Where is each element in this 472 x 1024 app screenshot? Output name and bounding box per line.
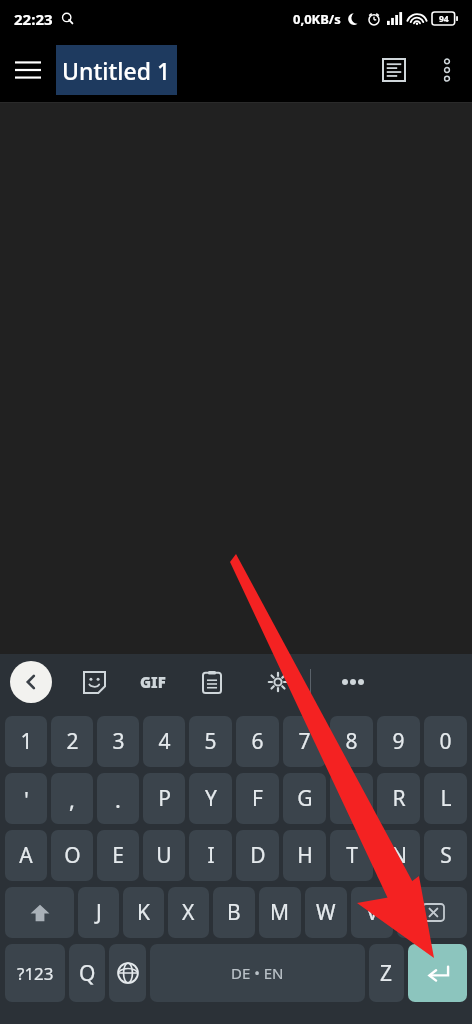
button[interactable]: ?123 xyxy=(5,944,65,1002)
button[interactable]: Clipboard xyxy=(192,662,232,702)
button[interactable]: Q xyxy=(69,944,105,1002)
button[interactable]: R xyxy=(377,773,420,824)
staticText: 2 xyxy=(66,727,79,756)
staticText: 4 xyxy=(158,727,171,756)
button[interactable]: C xyxy=(330,773,373,824)
button[interactable]: M xyxy=(259,887,301,938)
button[interactable]: I xyxy=(189,830,232,881)
staticText: S xyxy=(440,841,452,870)
button[interactable]: 6 xyxy=(236,716,279,767)
button[interactable]: GIF xyxy=(140,662,166,702)
staticText: B xyxy=(227,898,241,927)
button[interactable]: K xyxy=(123,887,164,938)
button[interactable]: H xyxy=(283,830,326,881)
button[interactable]: D xyxy=(236,830,279,881)
button[interactable]: T xyxy=(330,830,373,881)
button[interactable]: E xyxy=(97,830,139,881)
staticText: P xyxy=(158,784,171,813)
button[interactable]: More xyxy=(333,662,373,702)
staticText: U xyxy=(156,841,172,870)
staticText: 94 xyxy=(439,13,449,25)
staticText: ' xyxy=(24,784,29,814)
button[interactable]: Change language xyxy=(109,944,146,1002)
staticText: V xyxy=(366,898,379,927)
button[interactable]: ' xyxy=(5,773,47,824)
staticText: I xyxy=(207,841,215,870)
button[interactable]: F xyxy=(236,773,279,824)
staticText: H xyxy=(297,841,313,870)
staticText: M xyxy=(270,898,290,927)
button[interactable]: Stickers xyxy=(74,662,114,702)
staticText: R xyxy=(392,784,406,813)
staticText: A xyxy=(19,841,33,870)
staticText: ?123 xyxy=(17,962,54,985)
button[interactable]: 2 xyxy=(51,716,93,767)
button[interactable]: Backspace xyxy=(397,887,467,938)
staticText: 3 xyxy=(112,727,125,756)
button[interactable]: Format xyxy=(366,42,422,98)
staticText: W xyxy=(316,898,336,927)
staticText: D xyxy=(250,841,266,870)
staticText: J xyxy=(96,898,102,927)
button[interactable]: Shift xyxy=(5,887,74,938)
button[interactable]: J xyxy=(78,887,119,938)
button[interactable]: 1 xyxy=(5,716,47,767)
button[interactable]: G xyxy=(283,773,326,824)
button[interactable]: . xyxy=(97,773,139,824)
button[interactable]: Enter xyxy=(408,944,467,1002)
button[interactable]: DE • EN xyxy=(150,944,365,1002)
staticText: 6 xyxy=(251,727,264,756)
staticText: E xyxy=(112,841,124,870)
button[interactable]: P xyxy=(143,773,185,824)
staticText: O xyxy=(64,841,81,870)
staticText: C xyxy=(345,784,359,813)
staticText: 9 xyxy=(392,727,405,756)
button[interactable]: S xyxy=(424,830,467,881)
button[interactable]: Z xyxy=(369,944,404,1002)
button[interactable]: U xyxy=(143,830,185,881)
staticText: Q xyxy=(79,959,96,988)
button[interactable]: 9 xyxy=(377,716,420,767)
button[interactable]: 7 xyxy=(283,716,326,767)
button[interactable]: 0 xyxy=(424,716,467,767)
button[interactable]: N xyxy=(377,830,420,881)
staticText: Untitled 1 xyxy=(62,55,171,86)
button[interactable]: More options xyxy=(422,45,472,95)
button[interactable]: Y xyxy=(189,773,232,824)
button[interactable]: 4 xyxy=(143,716,185,767)
button[interactable]: A xyxy=(5,830,47,881)
button[interactable]: Untitled 1 xyxy=(56,45,177,95)
button[interactable]: 5 xyxy=(189,716,232,767)
button[interactable]: O xyxy=(51,830,93,881)
button[interactable]: Settings xyxy=(258,662,298,702)
staticText: L xyxy=(440,784,452,813)
staticText: X xyxy=(182,898,195,927)
staticText: F xyxy=(252,784,263,813)
button[interactable]: Navigation menu xyxy=(0,42,56,98)
staticText: 22:23 xyxy=(14,9,53,29)
staticText: 0 xyxy=(439,727,452,756)
button[interactable]: V xyxy=(351,887,393,938)
staticText: DE • EN xyxy=(231,963,284,983)
button[interactable]: 3 xyxy=(97,716,139,767)
button[interactable]: W xyxy=(305,887,347,938)
button[interactable]: L xyxy=(424,773,467,824)
staticText: 1 xyxy=(20,727,33,756)
staticText: 5 xyxy=(204,727,217,756)
button[interactable]: , xyxy=(51,773,93,824)
staticText: N xyxy=(391,841,407,870)
button[interactable]: Back xyxy=(10,661,52,703)
staticText: K xyxy=(137,898,150,927)
staticText: GIF xyxy=(140,672,166,692)
staticText: . xyxy=(115,784,121,814)
staticText: 0,0KB/s xyxy=(293,10,341,28)
button[interactable]: 8 xyxy=(330,716,373,767)
staticText: Y xyxy=(205,784,217,813)
staticText: 7 xyxy=(298,727,311,756)
staticText: Z xyxy=(380,959,393,988)
staticText: 8 xyxy=(345,727,358,756)
staticText: G xyxy=(297,784,313,813)
button[interactable]: X xyxy=(168,887,209,938)
staticText: , xyxy=(69,784,75,814)
button[interactable]: B xyxy=(213,887,255,938)
